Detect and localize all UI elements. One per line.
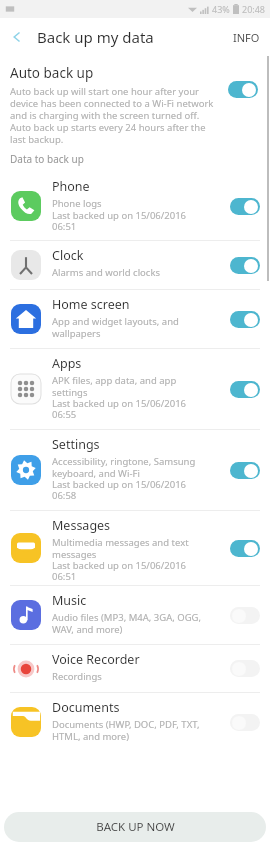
button[interactable]: Toggle on [230,462,260,479]
staticText: Messages [52,517,111,534]
button[interactable]: Toggle off [230,714,260,731]
button[interactable]: Documents [0,693,270,751]
staticText: Alarms and world clocks [52,266,161,279]
button[interactable]: Back [2,22,32,52]
staticText: 20:48 [242,3,266,15]
button[interactable]: INFO [223,22,270,53]
staticText: Accessibility, ringtone, Samsung keyboar… [52,455,196,502]
staticText: Settings [52,436,100,453]
staticText: Auto back up will start one hour after y… [10,85,215,146]
button[interactable]: Voice Recorder [0,645,270,692]
staticText: Home screen [52,296,130,313]
button[interactable]: Toggle on [230,257,260,274]
staticText: App and widget layouts, and wallpapers [52,315,179,340]
staticText: Clock [52,247,84,264]
button[interactable]: Settings [0,430,270,510]
staticText: Documents [52,699,120,716]
staticText: BACK UP NOW [96,819,175,835]
staticText: Recordings [52,670,102,683]
staticText: Auto back up [10,64,94,82]
staticText: APK files, app data, and app settings La… [52,374,187,421]
staticText: Phone [52,178,90,195]
button[interactable]: Apps [0,349,270,429]
button[interactable]: Toggle on [230,540,260,557]
button[interactable]: Messages [0,511,270,585]
button[interactable]: BACK UP NOW [4,812,266,842]
staticText: Voice Recorder [52,651,140,668]
staticText: Multimedia messages and text messages La… [52,536,189,583]
button[interactable]: Toggle off [230,660,260,677]
staticText: Audio files (MP3, M4A, 3GA, OGG, WAV, an… [52,611,202,636]
button[interactable]: Phone [0,172,270,240]
staticText: 43% [212,3,230,15]
staticText: Music [52,592,87,609]
button[interactable]: Clock [0,241,270,289]
staticText: Phone logs Last backed up on 15/06/2016 … [52,197,187,233]
button[interactable]: Toggle off [230,607,260,624]
button[interactable]: Toggle on [230,311,260,328]
staticText: Data to back up [10,152,84,166]
button[interactable]: Toggle on [230,381,260,398]
staticText: Back up my data [37,27,154,47]
button[interactable]: Music [0,586,270,644]
button[interactable]: Home screen [0,290,270,348]
staticText: Apps [52,355,82,372]
staticText: Documents (HWP, DOC, PDF, TXT, HTML, and… [52,718,200,743]
button[interactable]: Toggle on [228,81,258,98]
staticText: INFO [233,30,260,45]
button[interactable]: Toggle on [230,198,260,215]
